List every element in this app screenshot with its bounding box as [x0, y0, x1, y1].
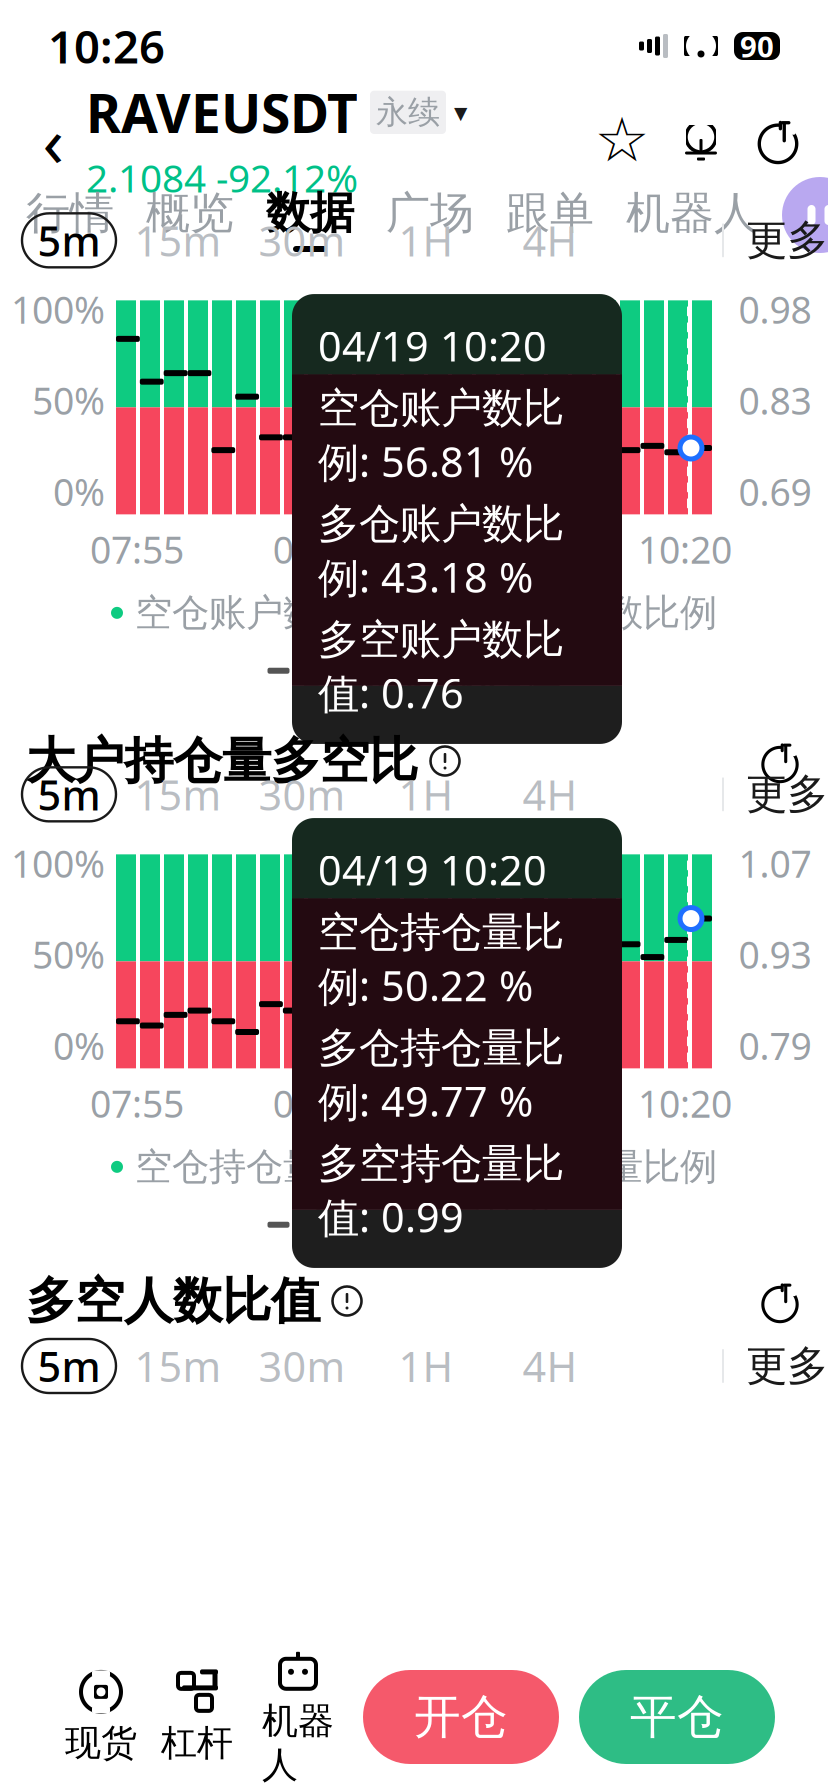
button[interactable]: 1H	[364, 213, 488, 267]
staticText: ☆	[594, 105, 649, 175]
staticText: 2.1084 -92.12%	[86, 152, 358, 203]
button[interactable]: 1H	[364, 767, 488, 821]
button[interactable]: Back	[26, 105, 80, 175]
button[interactable]: Share	[754, 116, 802, 164]
staticText: 更多	[746, 1341, 828, 1391]
button[interactable]: 平仓	[579, 1670, 775, 1764]
staticText: 09:30	[455, 1078, 549, 1128]
staticText: 多空账户数比值	[301, 648, 560, 694]
staticText: 行情	[26, 186, 114, 240]
button[interactable]: 数据	[266, 186, 354, 252]
button[interactable]: 15m	[116, 767, 240, 821]
staticText: 10:26	[48, 16, 165, 76]
staticText: 0.79	[738, 1021, 811, 1070]
staticText: 15m	[134, 767, 221, 822]
button[interactable]: 杠杆	[149, 1669, 245, 1765]
button[interactable]: 15m	[116, 1339, 240, 1393]
staticText: 30m	[258, 1339, 345, 1393]
staticText: 多仓账户数比例: 43.18 %	[318, 499, 564, 604]
button[interactable]: Alerts	[676, 115, 726, 165]
staticText: RAVEUSDT	[86, 77, 358, 148]
button[interactable]: 30m	[240, 1339, 364, 1393]
button[interactable]: 行情	[26, 186, 114, 252]
button[interactable]: Share 多空人数比值	[758, 1279, 802, 1323]
staticText: 多仓持仓量比例: 49.77 %	[318, 1023, 564, 1128]
button[interactable]: Share 大户持仓量多空比	[758, 739, 802, 783]
staticText: 1H	[398, 1339, 453, 1393]
staticText: 08:40	[273, 1078, 367, 1128]
staticText: 4H	[522, 213, 577, 268]
button[interactable]: 4H	[488, 213, 612, 267]
staticText: 5m	[37, 213, 100, 268]
staticText: 现货	[65, 1721, 137, 1765]
staticText: 更多	[746, 769, 828, 820]
button[interactable]: 机器人	[626, 186, 758, 252]
button[interactable]: 30m	[240, 767, 364, 821]
staticText: 平仓	[630, 1688, 724, 1746]
staticText: 15m	[134, 213, 221, 268]
staticText: 空仓账户数比例	[135, 590, 394, 636]
staticText: 10:20	[638, 1078, 732, 1128]
button[interactable]: 30m	[240, 213, 364, 267]
staticText: 30m	[258, 213, 345, 268]
button[interactable]: 5m	[22, 767, 116, 821]
staticText: 多空持仓量比值: 0.99	[318, 1138, 564, 1244]
button[interactable]: 15m	[116, 213, 240, 267]
button[interactable]: 机器人	[245, 1647, 351, 1787]
button[interactable]: 4H	[488, 1339, 612, 1393]
staticText: 4H	[522, 1339, 577, 1393]
staticText: 0.93	[738, 930, 811, 979]
button[interactable]: 现货	[53, 1669, 149, 1765]
button[interactable]: 概览	[146, 186, 234, 252]
staticText: 多空人数比值	[26, 1271, 320, 1331]
staticText: 多空账户数比值: 0.76	[318, 614, 564, 720]
staticText: 5m	[37, 1339, 100, 1393]
button[interactable]: 更多	[724, 1341, 828, 1391]
button[interactable]: 5m	[22, 1339, 116, 1393]
button[interactable]: Favorite	[596, 114, 648, 166]
staticText: 0.69	[738, 467, 811, 516]
button[interactable]: 跟单	[506, 186, 594, 252]
staticText: 100%	[11, 284, 105, 334]
staticText: 08:40	[273, 524, 367, 574]
staticText: 1.07	[738, 838, 811, 888]
staticText: 30m	[258, 767, 345, 822]
staticText: 机器人	[626, 186, 758, 240]
staticText: 机器人	[262, 1699, 334, 1787]
staticText: 50%	[32, 930, 105, 979]
staticText: 09:30	[455, 524, 549, 574]
staticText: 10:20	[638, 524, 732, 574]
button[interactable]: 4H	[488, 767, 612, 821]
staticText: 04/19 10:20	[318, 842, 547, 897]
button[interactable]: 更多	[724, 769, 828, 820]
staticText: 0%	[53, 467, 105, 516]
staticText: 15m	[134, 1339, 221, 1393]
staticText: 杠杆	[161, 1721, 233, 1765]
staticText: ‹	[42, 94, 63, 186]
staticText: 概览	[146, 186, 234, 240]
staticText: ▾	[454, 97, 467, 127]
staticText: 广场	[386, 186, 474, 240]
button[interactable]: 永续	[370, 91, 467, 134]
staticText: 多仓账户数比例	[458, 590, 717, 636]
staticText: 空仓持仓量比例: 50.22 %	[318, 907, 564, 1013]
staticText: 空仓账户数比例: 56.81 %	[318, 383, 564, 489]
staticText: 数据	[266, 186, 354, 240]
button[interactable]: 1H	[364, 1339, 488, 1393]
staticText: 1H	[398, 213, 453, 268]
staticText: 0.83	[738, 376, 811, 425]
staticText: 04/19 10:20	[318, 318, 547, 373]
staticText: 4H	[522, 767, 577, 822]
staticText: 开仓	[414, 1688, 508, 1746]
staticText: 90	[740, 26, 774, 65]
staticText: 跟单	[506, 186, 594, 240]
staticText: 0%	[53, 1021, 105, 1070]
staticText: 07:55	[90, 1078, 184, 1128]
button[interactable]: 更多	[724, 215, 828, 266]
staticText: 50%	[32, 376, 105, 425]
button[interactable]: 开仓	[363, 1670, 559, 1764]
staticText: 07:55	[90, 524, 184, 574]
button[interactable]: 广场	[386, 186, 474, 252]
button[interactable]: 5m	[22, 213, 116, 267]
staticText: 多仓持仓量比例	[458, 1144, 717, 1190]
